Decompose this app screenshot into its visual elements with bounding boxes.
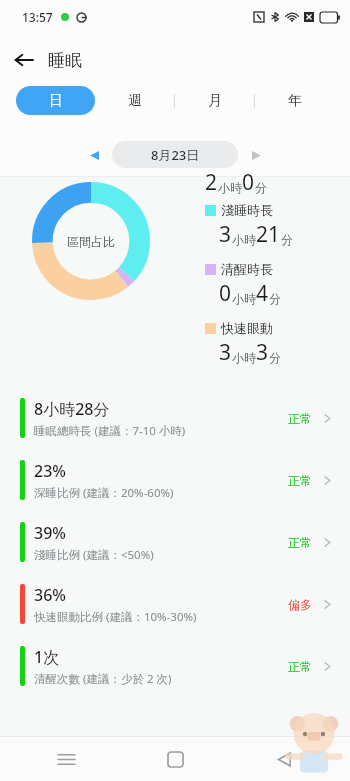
- staticText: 0: [242, 168, 255, 197]
- staticText: 正常: [288, 535, 312, 550]
- staticText: 分: [269, 350, 281, 365]
- staticText: 清醒時長: [221, 261, 273, 277]
- staticText: 日: [49, 92, 63, 110]
- button[interactable]: 後一天: [243, 142, 269, 168]
- button[interactable]: 返回: [262, 737, 306, 781]
- staticText: 深睡比例 (建議：20%-60%): [34, 485, 174, 501]
- staticText: 正常: [288, 473, 312, 488]
- button[interactable]: 23%: [0, 449, 350, 511]
- staticText: 快速眼動比例 (建議：10%-30%): [34, 609, 197, 625]
- staticText: 小時: [232, 350, 256, 365]
- button[interactable]: 主畫面: [153, 737, 197, 781]
- staticText: 小時: [218, 180, 242, 195]
- button[interactable]: 8月23日: [112, 141, 238, 168]
- staticText: 偏多: [288, 597, 312, 612]
- staticText: 分: [281, 232, 293, 247]
- button[interactable]: 返回: [0, 36, 48, 84]
- staticText: 3: [256, 338, 269, 367]
- staticText: 清醒次數 (建議：少於 2 次): [34, 671, 172, 687]
- staticText: 區間占比: [67, 234, 115, 249]
- staticText: 39%: [34, 522, 66, 544]
- button[interactable]: 39%: [0, 511, 350, 573]
- staticText: 月: [208, 92, 222, 110]
- staticText: 睡眠: [48, 50, 82, 71]
- staticText: 年: [288, 92, 302, 110]
- staticText: 0: [219, 279, 232, 308]
- staticText: 睡眠總時長 (建議：7-10 小時): [34, 423, 186, 439]
- staticText: 13:57: [22, 9, 53, 25]
- button[interactable]: 36%: [0, 573, 350, 635]
- button[interactable]: 年: [255, 86, 334, 115]
- staticText: 3: [219, 338, 232, 367]
- staticText: 正常: [288, 659, 312, 674]
- staticText: 36%: [34, 584, 66, 606]
- staticText: 分: [255, 180, 267, 195]
- staticText: 快速眼動: [221, 320, 273, 336]
- staticText: 正常: [288, 411, 312, 426]
- staticText: 8小時28分: [34, 398, 110, 420]
- button[interactable]: 週: [95, 86, 174, 115]
- button[interactable]: 1次: [0, 635, 350, 697]
- staticText: 4: [256, 279, 269, 308]
- staticText: 2: [205, 168, 218, 197]
- staticText: 3: [219, 220, 232, 249]
- staticText: 週: [128, 92, 142, 110]
- staticText: 21: [256, 220, 281, 249]
- button[interactable]: 日: [16, 86, 95, 115]
- staticText: 小時: [232, 291, 256, 306]
- button[interactable]: 前一天: [81, 142, 107, 168]
- button[interactable]: 8小時28分: [0, 387, 350, 449]
- button[interactable]: 最近應用: [44, 737, 88, 781]
- staticText: 分: [269, 291, 281, 306]
- staticText: 23%: [34, 460, 66, 482]
- staticText: 淺睡時長: [221, 202, 273, 218]
- button[interactable]: 月: [175, 86, 254, 115]
- staticText: 小時: [232, 232, 256, 247]
- staticText: 8月23日: [151, 146, 200, 164]
- staticText: 1次: [34, 646, 60, 668]
- staticText: 淺睡比例 (建議：<50%): [34, 547, 154, 563]
